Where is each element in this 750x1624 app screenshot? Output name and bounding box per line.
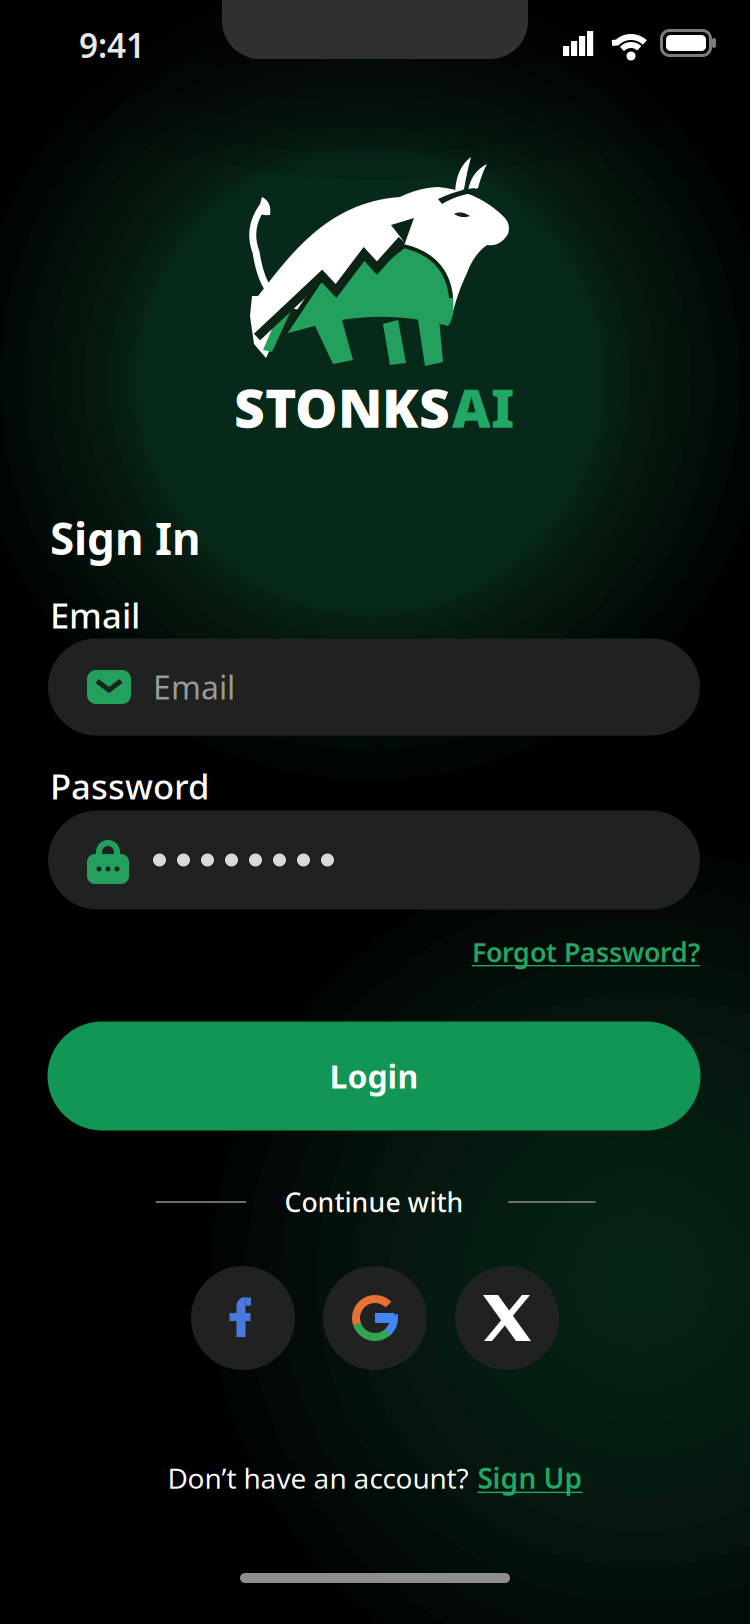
staticText: Login [329, 1055, 418, 1097]
staticText: Email [153, 666, 235, 708]
button[interactable]: Continue with Google [323, 1266, 427, 1370]
button[interactable] [48, 810, 700, 909]
button[interactable]: Forgot Password? [0, 934, 750, 970]
button[interactable]: Email [48, 638, 700, 735]
staticText: Forgot Password? [472, 934, 700, 970]
button[interactable]: Login [47, 1021, 700, 1130]
button[interactable]: Continue with X [455, 1266, 559, 1370]
staticText: Continue with [284, 1184, 463, 1220]
button[interactable]: Sign Up [477, 1459, 582, 1497]
staticText: Don’t have an account? [167, 1459, 468, 1497]
staticText: Password [50, 763, 209, 809]
staticText: Sign In [50, 509, 201, 567]
staticText: Email [50, 592, 140, 638]
staticText: 9:41 [79, 23, 145, 67]
staticText: Sign Up [477, 1459, 582, 1497]
button[interactable]: Continue with Facebook [191, 1266, 295, 1370]
staticText: STONKS [234, 372, 450, 442]
staticText: AI [452, 372, 514, 442]
